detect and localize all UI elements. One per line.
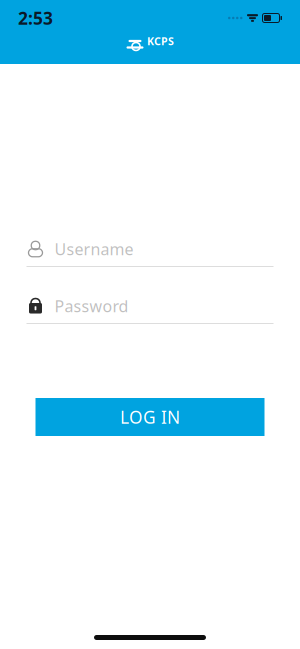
staticText: LOG IN	[120, 405, 180, 428]
staticText: Username	[54, 238, 133, 260]
staticText: KCPS	[147, 34, 174, 48]
staticText: Password	[54, 295, 128, 317]
button[interactable]: LOG IN	[35, 398, 264, 436]
staticText: 2:53	[18, 6, 53, 29]
